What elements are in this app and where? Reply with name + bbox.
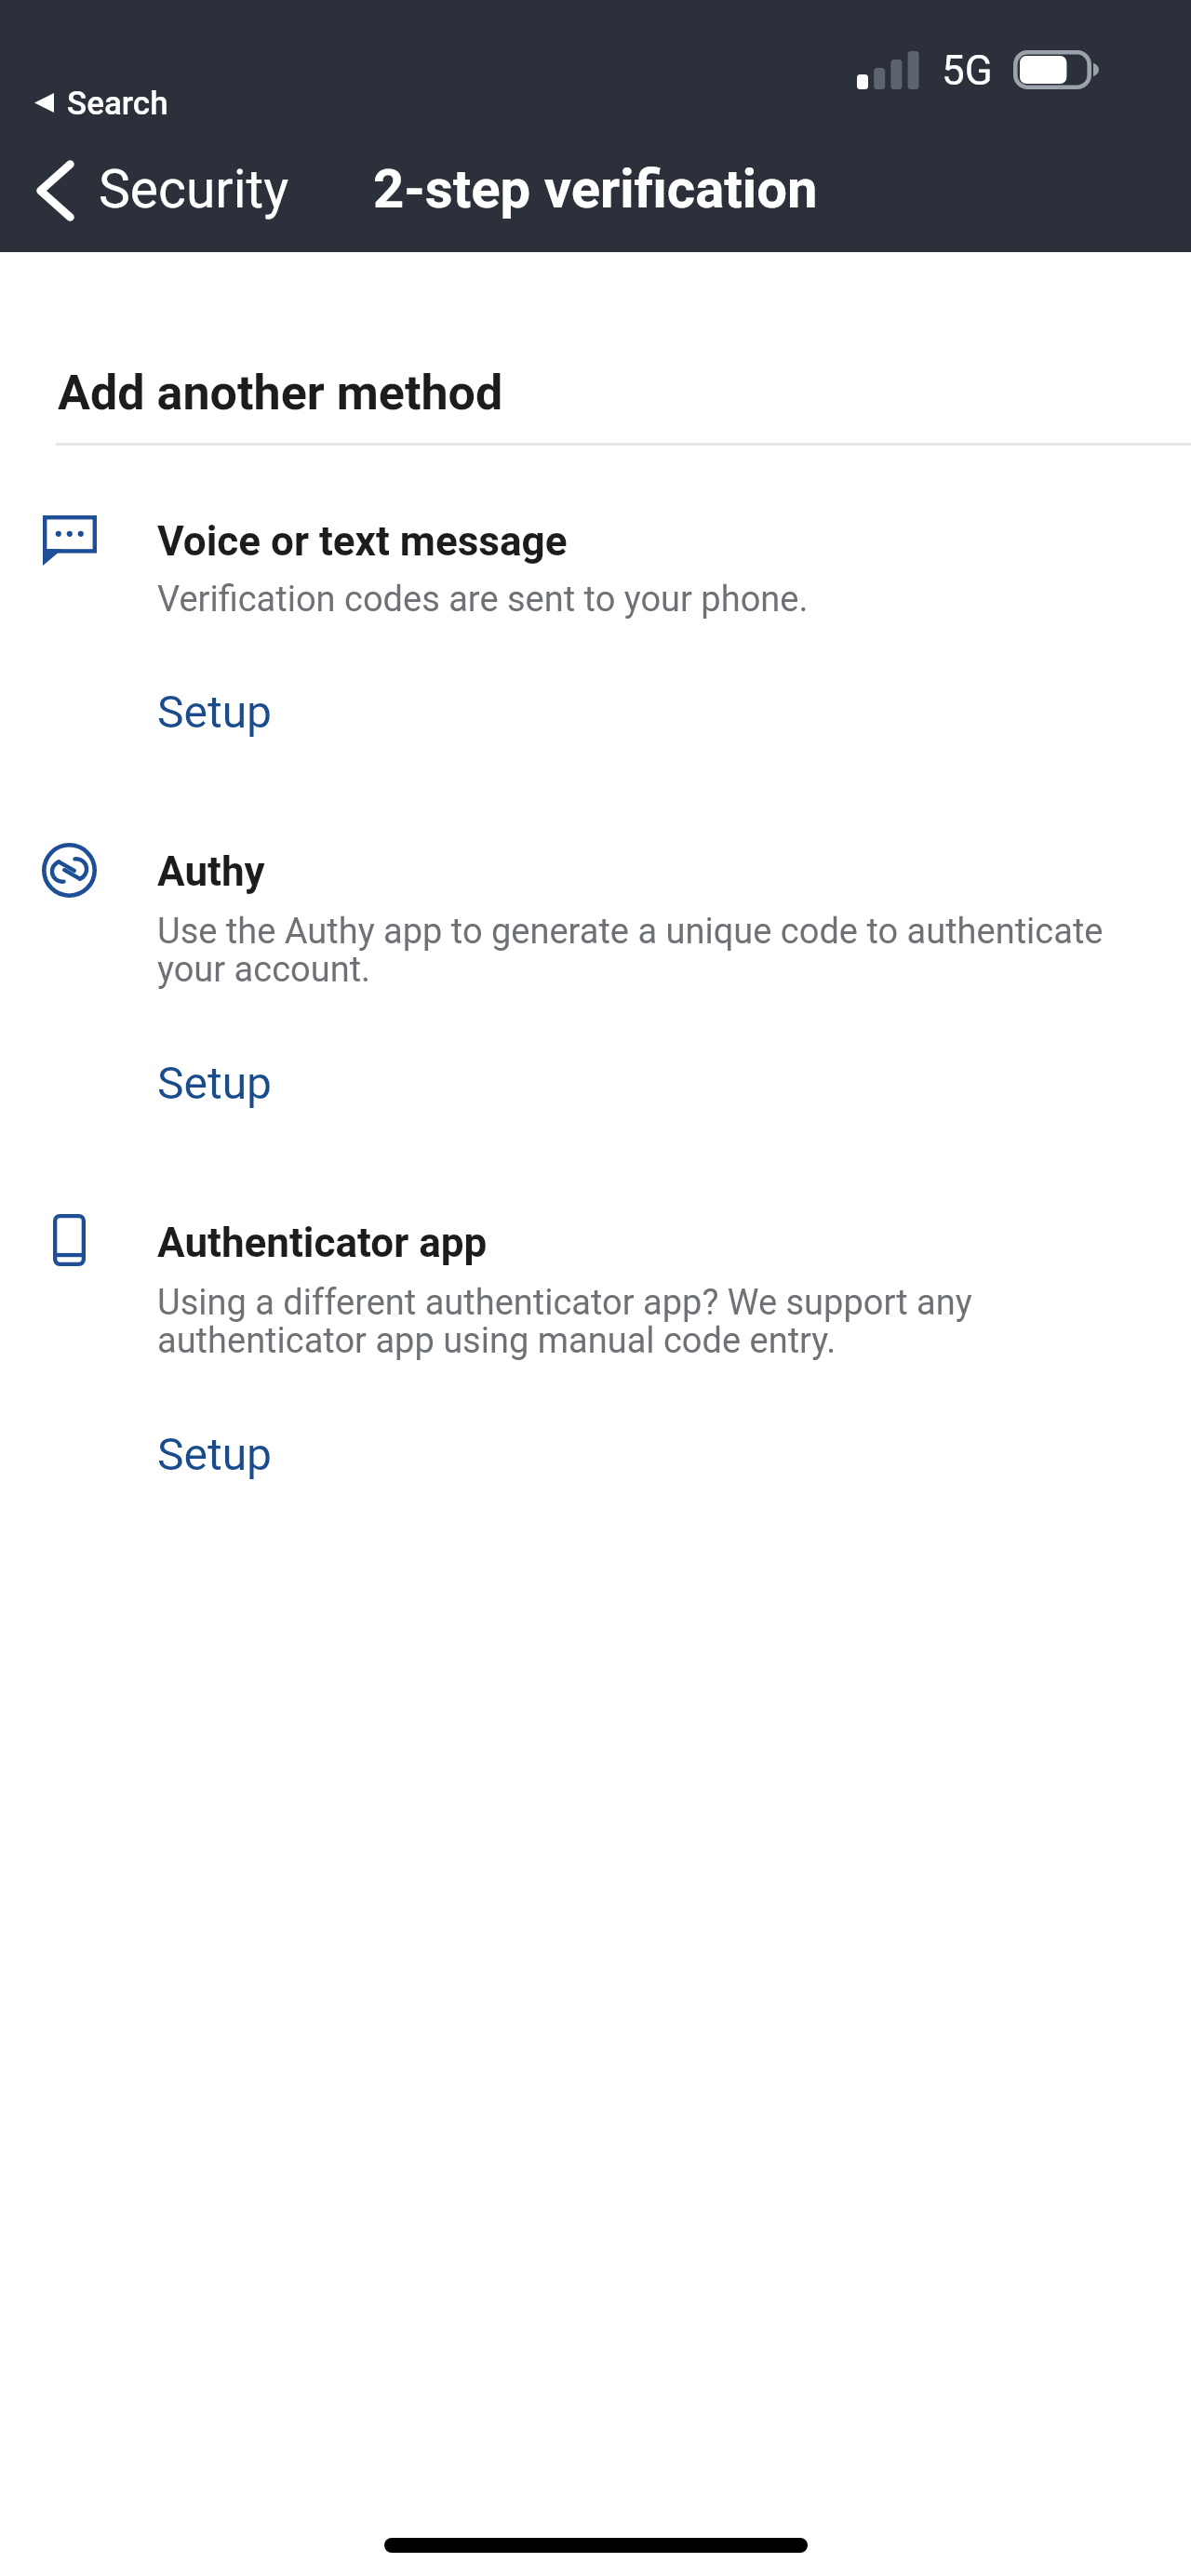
button[interactable]: Setup — [157, 1428, 273, 1480]
staticText: Authenticator app — [157, 1219, 488, 1267]
staticText: 2-step verification — [373, 157, 818, 220]
button[interactable]: Authenticator app — [0, 1200, 1191, 1377]
other: Authenticator app — [53, 1214, 86, 1266]
staticText: Authy — [157, 848, 265, 896]
staticText: Using a different authenticator app? We … — [157, 1282, 1134, 1362]
staticText: 5G — [942, 47, 993, 95]
staticText: Verification codes are sent to your phon… — [157, 579, 1134, 621]
staticText: Use the Authy app to generate a unique c… — [157, 911, 1134, 991]
staticText: Add another method — [58, 365, 503, 421]
staticText: Search — [67, 85, 168, 123]
button[interactable]: Setup — [157, 686, 273, 738]
button[interactable]: Back to Security — [36, 160, 75, 221]
other: Voice or text message — [43, 515, 97, 566]
other: Authy — [42, 843, 97, 898]
staticText: Security — [99, 158, 289, 220]
staticText: Voice or text message — [157, 517, 568, 566]
button[interactable]: Voice or text message — [0, 493, 1191, 642]
staticText: Setup — [157, 1428, 273, 1480]
staticText: Setup — [157, 1057, 273, 1109]
button[interactable]: Setup — [157, 1057, 273, 1109]
button[interactable]: Authy — [0, 828, 1191, 1005]
button[interactable]: Back to Search — [34, 87, 168, 125]
staticText: Setup — [157, 686, 273, 738]
